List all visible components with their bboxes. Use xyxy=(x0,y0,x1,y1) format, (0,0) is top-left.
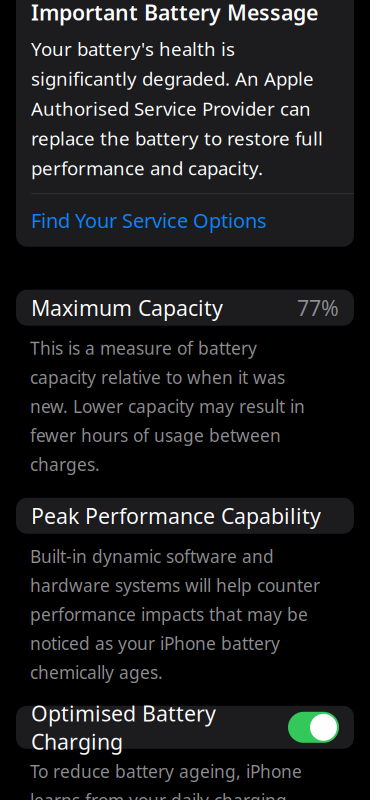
staticText: Peak Performance Capability xyxy=(31,502,321,530)
staticText: 77% xyxy=(297,293,339,322)
staticText: Optimised Battery Charging xyxy=(31,699,216,756)
button[interactable]: Find Your Service Options xyxy=(16,194,354,247)
staticText: Important Battery Message xyxy=(31,0,318,26)
staticText: Maximum Capacity xyxy=(31,293,223,322)
staticText: Your battery's health is significantly d… xyxy=(31,36,323,180)
button[interactable]: Peak Performance Capability xyxy=(16,498,354,534)
staticText: Built-in dynamic software and hardware s… xyxy=(30,545,320,684)
button[interactable]: Optimised Battery Charging xyxy=(288,712,339,743)
staticText: This is a measure of battery capacity re… xyxy=(30,337,305,476)
staticText: To reduce battery ageing, iPhone learns … xyxy=(30,760,305,800)
staticText: Find Your Service Options xyxy=(31,207,267,234)
